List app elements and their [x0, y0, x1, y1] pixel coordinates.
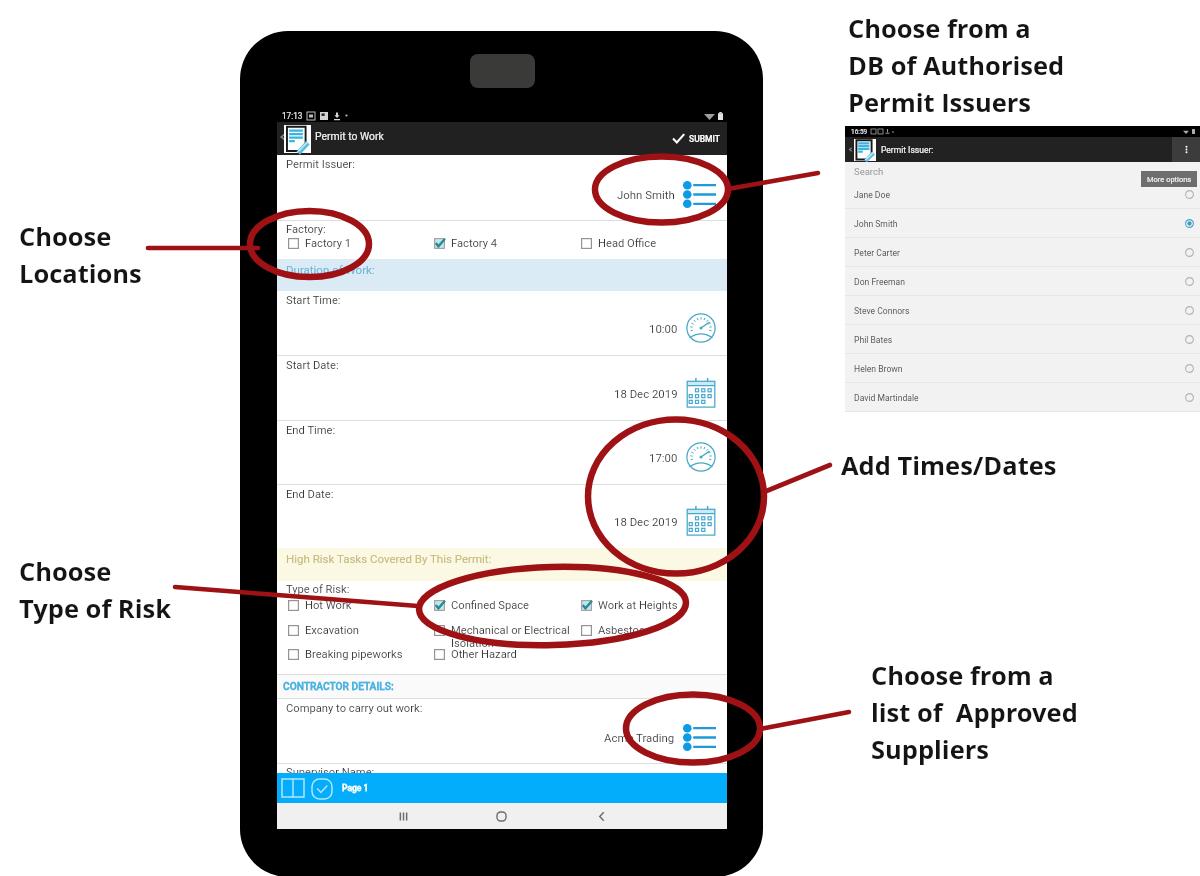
staticText: Company to carry out work:	[286, 702, 423, 715]
staticText: Factory:	[286, 223, 326, 236]
staticText: Steve Connors	[854, 306, 910, 316]
staticText: Phil Bates	[854, 335, 893, 345]
button[interactable]: Asbestos	[570, 624, 710, 637]
staticText: Factory 1	[305, 237, 352, 250]
button[interactable]: Start Time:	[277, 291, 727, 355]
staticText: Choose from a list of Approved Suppliers	[871, 658, 1078, 766]
staticText: Choose Locations	[19, 219, 142, 290]
staticText: Start Date:	[286, 359, 339, 372]
staticText: End Date:	[286, 488, 334, 501]
button[interactable]: Company to carry out work:	[277, 699, 727, 763]
button[interactable]: Phil Bates	[845, 325, 1200, 354]
button[interactable]: End Time:	[277, 421, 727, 484]
staticText: Confined Space	[451, 599, 530, 612]
staticText: SUBMIT	[689, 134, 720, 144]
button[interactable]: Factory 4	[423, 237, 570, 250]
staticText: Type of Risk:	[286, 583, 350, 596]
staticText: John Smith	[617, 188, 675, 201]
staticText: 16:59	[851, 128, 868, 136]
staticText: Page 1	[342, 783, 369, 793]
staticText: John Smith	[854, 219, 898, 229]
button[interactable]: Mechanical or Electrical Isolation	[423, 624, 570, 650]
button[interactable]: Peter Carter	[845, 238, 1200, 267]
staticText: Don Freeman	[854, 277, 905, 287]
button[interactable]: Excavation	[277, 624, 423, 637]
staticText: Head Office	[598, 237, 657, 250]
staticText: High Risk Tasks Covered By This Permit:	[286, 552, 492, 565]
staticText: Asbestos	[598, 624, 645, 637]
button[interactable]: Back	[278, 132, 288, 142]
staticText: 17:00	[649, 451, 678, 464]
button[interactable]: David Martindale	[845, 383, 1200, 412]
staticText: Supervisor Name:	[286, 766, 375, 773]
button[interactable]: Back	[590, 803, 613, 829]
button[interactable]: Other Hazard	[423, 648, 570, 661]
button[interactable]: Hot Work	[277, 599, 423, 612]
staticText: Work at Heights	[598, 599, 678, 612]
staticText: Choose Type of Risk	[19, 554, 171, 625]
staticText: Start Time:	[286, 294, 341, 307]
button[interactable]: Factory 1	[277, 237, 423, 250]
staticText: Peter Carter	[854, 248, 901, 258]
button[interactable]: More options	[1172, 137, 1200, 162]
button[interactable]: Steve Connors	[845, 296, 1200, 325]
staticText: Search	[854, 166, 884, 177]
staticText: David Martindale	[854, 393, 919, 403]
button[interactable]: Complete	[311, 778, 333, 800]
button[interactable]: Head Office	[570, 237, 710, 250]
button[interactable]: John Smith	[845, 209, 1200, 238]
staticText: Factory 4	[451, 237, 498, 250]
staticText: More options	[1147, 175, 1192, 184]
button[interactable]: SUBMIT	[665, 126, 727, 151]
staticText: Acme Trading	[604, 731, 675, 744]
staticText: Breaking pipeworks	[305, 648, 403, 661]
staticText: Mechanical or Electrical Isolation	[451, 624, 570, 650]
staticText: Excavation	[305, 624, 360, 637]
staticText: Jane Doe	[854, 190, 890, 200]
staticText: 17:13	[282, 111, 303, 121]
button[interactable]: Don Freeman	[845, 267, 1200, 296]
staticText: Hot Work	[305, 599, 352, 612]
staticText: CONTRACTOR DETAILS:	[283, 681, 394, 693]
staticText: 10:00	[649, 322, 678, 335]
staticText: End Time:	[286, 424, 336, 437]
staticText: 18 Dec 2019	[614, 387, 678, 400]
staticText: 18 Dec 2019	[614, 515, 678, 528]
staticText: Choose from a DB of Authorised Permit Is…	[848, 11, 1065, 119]
staticText: Other Hazard	[451, 648, 517, 661]
staticText: Add Times/Dates	[841, 448, 1057, 483]
button[interactable]: End Date:	[277, 485, 727, 548]
button[interactable]: Confined Space	[423, 599, 570, 612]
button[interactable]: Home	[490, 803, 513, 829]
staticText: Permit Issuer:	[286, 158, 355, 171]
button[interactable]: Permit Issuer:	[277, 155, 727, 220]
button[interactable]: Jane Doe	[845, 180, 1200, 209]
staticText: Duration of Work:	[286, 263, 375, 276]
button[interactable]: Work at Heights	[570, 599, 710, 612]
button[interactable]: Recents	[392, 803, 415, 829]
staticText: Permit to Work	[315, 130, 384, 142]
button[interactable]: Breaking pipeworks	[277, 648, 423, 661]
staticText: Permit Issuer:	[881, 145, 934, 155]
staticText: Helen Brown	[854, 364, 903, 374]
button[interactable]: Pages	[281, 778, 305, 798]
button[interactable]: Start Date:	[277, 356, 727, 420]
button[interactable]: Helen Brown	[845, 354, 1200, 383]
